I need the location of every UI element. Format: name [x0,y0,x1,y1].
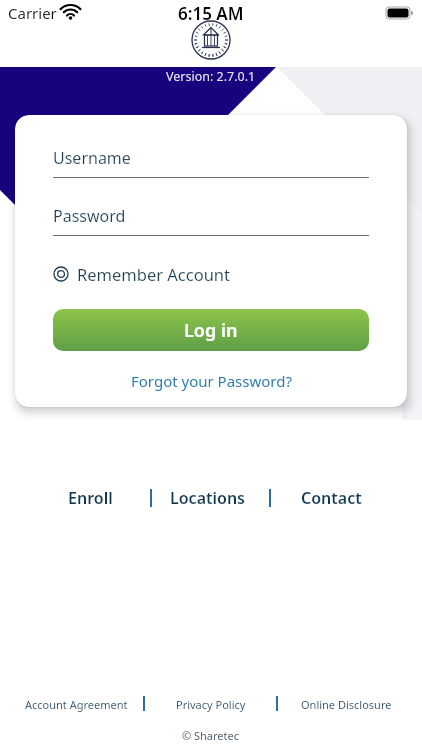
button[interactable]: Enroll [55,480,125,516]
staticText: Password [53,205,126,227]
button[interactable]: Forgot your Password? [53,371,369,391]
staticText: Online Disclosure [301,697,392,712]
button[interactable]: Log in [53,309,369,351]
staticText: Enroll [68,487,113,509]
staticText: Locations [170,487,245,509]
staticText: Log in [184,318,238,343]
staticText: Account Agreement [25,697,128,712]
button[interactable]: Privacy Policy [160,693,262,715]
button[interactable]: Contact [295,480,367,516]
button[interactable]: Remember Account [53,263,231,285]
staticText: © Sharetec [182,728,240,743]
staticText: Privacy Policy [176,697,246,712]
staticText: Username [53,147,131,169]
staticText: Version: 2.7.0.1 [166,68,256,85]
staticText: 6:15 AM [178,2,244,25]
staticText: Remember Account [77,263,231,285]
staticText: Forgot your Password? [131,371,292,391]
button[interactable]: Online Disclosure [292,693,400,715]
button[interactable]: Account Agreement [20,693,132,715]
staticText: Contact [301,487,362,509]
staticText: Carrier [8,3,57,23]
button[interactable]: Locations [161,480,253,516]
